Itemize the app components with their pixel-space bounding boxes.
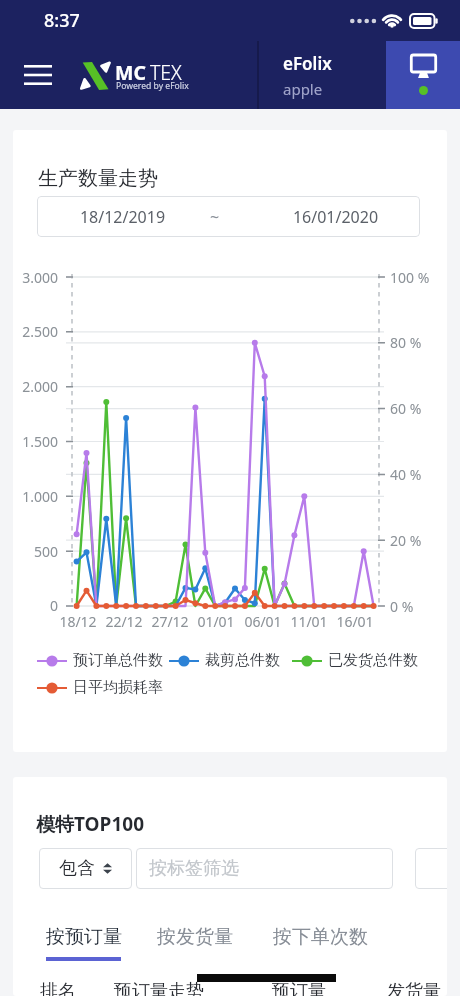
staticText: 18/12 bbox=[58, 612, 98, 631]
staticText: 2.000 bbox=[13, 377, 58, 396]
button[interactable] bbox=[415, 848, 447, 889]
staticText: 18/12/2019 bbox=[56, 206, 189, 228]
staticText: 2.500 bbox=[13, 322, 58, 341]
button[interactable]: 预订单总件数 bbox=[37, 651, 163, 670]
button[interactable]: 按下单次数 bbox=[273, 925, 368, 957]
staticText: 预订量 bbox=[272, 980, 326, 996]
staticText: 日平均损耗率 bbox=[73, 678, 163, 697]
button[interactable]: 按预订量 bbox=[46, 925, 122, 961]
staticText: 按预订量 bbox=[46, 925, 122, 949]
staticText: apple bbox=[283, 79, 323, 99]
staticText: 01/01 bbox=[196, 612, 236, 631]
staticText: 按发货量 bbox=[157, 925, 233, 949]
button[interactable]: 裁剪总件数 bbox=[169, 651, 280, 670]
staticText: 1.000 bbox=[13, 487, 58, 506]
staticText: MC bbox=[115, 59, 146, 86]
staticText: 8:37 bbox=[44, 8, 80, 33]
button[interactable]: 按发货量 bbox=[157, 925, 233, 957]
staticText: 裁剪总件数 bbox=[205, 651, 280, 670]
staticText: 已发货总件数 bbox=[328, 651, 418, 670]
staticText: 按下单次数 bbox=[273, 925, 368, 949]
staticText: 按标签筛选 bbox=[149, 857, 239, 880]
staticText: 500 bbox=[13, 542, 58, 561]
button[interactable]: Connected display status bbox=[386, 41, 460, 109]
button[interactable]: 包含 bbox=[39, 848, 132, 889]
staticText: 22/12 bbox=[104, 612, 144, 631]
staticText: 06/01 bbox=[243, 612, 283, 631]
staticText: eFolix bbox=[283, 52, 332, 75]
staticText: 16/01 bbox=[335, 612, 375, 631]
staticText: 生产数量走势 bbox=[38, 166, 158, 191]
staticText: 0 bbox=[13, 596, 58, 615]
staticText: 40 % bbox=[390, 465, 422, 484]
staticText: ~ bbox=[198, 206, 231, 228]
staticText: Powered by eFolix bbox=[116, 80, 189, 92]
staticText: 3.000 bbox=[13, 268, 58, 287]
staticText: 排名 bbox=[40, 980, 76, 996]
staticText: 16/01/2020 bbox=[269, 206, 402, 228]
staticText: 预订单总件数 bbox=[73, 651, 163, 670]
staticText: 模特TOP100 bbox=[36, 811, 145, 837]
staticText: 包含 bbox=[59, 857, 95, 880]
staticText: 预订量走势 bbox=[114, 980, 204, 996]
staticText: 100 % bbox=[390, 268, 430, 287]
staticText: 发货量 bbox=[387, 980, 441, 996]
staticText: 0 % bbox=[390, 597, 414, 616]
button[interactable]: 按标签筛选 bbox=[136, 848, 393, 889]
staticText: 80 % bbox=[390, 333, 422, 352]
staticText: 11/01 bbox=[289, 612, 329, 631]
button[interactable]: 日平均损耗率 bbox=[37, 678, 163, 697]
staticText: 1.500 bbox=[13, 432, 58, 451]
staticText: 60 % bbox=[390, 399, 422, 418]
button[interactable]: Open navigation menu bbox=[0, 41, 76, 109]
staticText: TEX bbox=[150, 59, 182, 86]
staticText: 27/12 bbox=[150, 612, 190, 631]
button[interactable]: 18/12/2019 bbox=[37, 196, 420, 237]
staticText: 20 % bbox=[390, 531, 422, 550]
button[interactable]: 已发货总件数 bbox=[292, 651, 418, 670]
